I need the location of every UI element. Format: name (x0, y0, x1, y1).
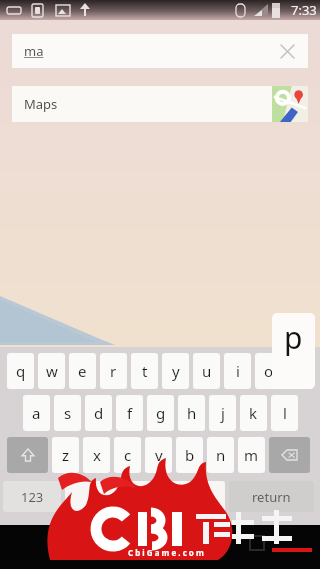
button[interactable]: m (238, 437, 265, 473)
button[interactable]: x (83, 437, 110, 473)
staticText: p (284, 317, 303, 358)
staticText: 7:33 (291, 1, 317, 19)
staticText: x (93, 445, 101, 465)
button[interactable]: i (224, 353, 251, 389)
button[interactable]: c (114, 437, 141, 473)
staticText: c (124, 445, 132, 465)
staticText: j (221, 403, 225, 423)
staticText: a (32, 403, 41, 423)
staticText: s (64, 403, 72, 423)
button[interactable]: Maps (12, 86, 308, 122)
staticText: ma (24, 42, 44, 60)
staticText: y (172, 361, 180, 381)
staticText: b (185, 445, 195, 465)
button[interactable]: space (65, 481, 225, 512)
button[interactable]: y (162, 353, 189, 389)
button[interactable]: t (131, 353, 158, 389)
button[interactable]: v (145, 437, 172, 473)
button[interactable]: k (240, 395, 267, 431)
button[interactable]: g (147, 395, 174, 431)
button[interactable]: 123 (3, 481, 61, 512)
staticText: z (62, 445, 70, 465)
staticText: v (155, 445, 163, 465)
staticText: k (249, 403, 258, 423)
button[interactable]: Shift (7, 437, 48, 473)
staticText: t (142, 361, 148, 381)
staticText: r (110, 361, 117, 381)
staticText: q (16, 361, 26, 381)
staticText: u (202, 361, 212, 381)
button[interactable]: u (193, 353, 220, 389)
button[interactable]: r (100, 353, 127, 389)
staticText: h (187, 403, 197, 423)
staticText: Maps (24, 95, 272, 113)
staticText: g (156, 403, 166, 423)
button[interactable]: Backspace (269, 437, 310, 473)
staticText: w (46, 361, 58, 381)
button[interactable]: s (54, 395, 81, 431)
button[interactable]: w (38, 353, 65, 389)
staticText: l (283, 403, 287, 423)
button[interactable]: n (207, 437, 234, 473)
button[interactable]: z (52, 437, 79, 473)
button[interactable]: d (85, 395, 112, 431)
button[interactable]: j (209, 395, 236, 431)
button[interactable]: a (23, 395, 50, 431)
button[interactable]: l (271, 395, 298, 431)
staticText: return (252, 488, 291, 506)
staticText: d (94, 403, 104, 423)
staticText: i (236, 361, 240, 381)
button[interactable]: p (286, 353, 313, 389)
button[interactable]: q (7, 353, 34, 389)
staticText: o (264, 361, 274, 381)
staticText: 123 (21, 488, 44, 506)
staticText: m (244, 445, 259, 465)
staticText: C b i G a m e . c o m (128, 547, 204, 558)
button[interactable]: f (116, 395, 143, 431)
button[interactable]: h (178, 395, 205, 431)
staticText: e (78, 361, 87, 381)
button[interactable]: e (69, 353, 96, 389)
staticText: n (216, 445, 226, 465)
button[interactable]: ma (12, 34, 308, 68)
button[interactable]: Clear search (274, 38, 300, 64)
button[interactable]: b (176, 437, 203, 473)
button[interactable]: return (229, 481, 314, 512)
button[interactable]: o (255, 353, 282, 389)
button[interactable]: Maps app (272, 86, 308, 122)
staticText: f (127, 403, 133, 423)
